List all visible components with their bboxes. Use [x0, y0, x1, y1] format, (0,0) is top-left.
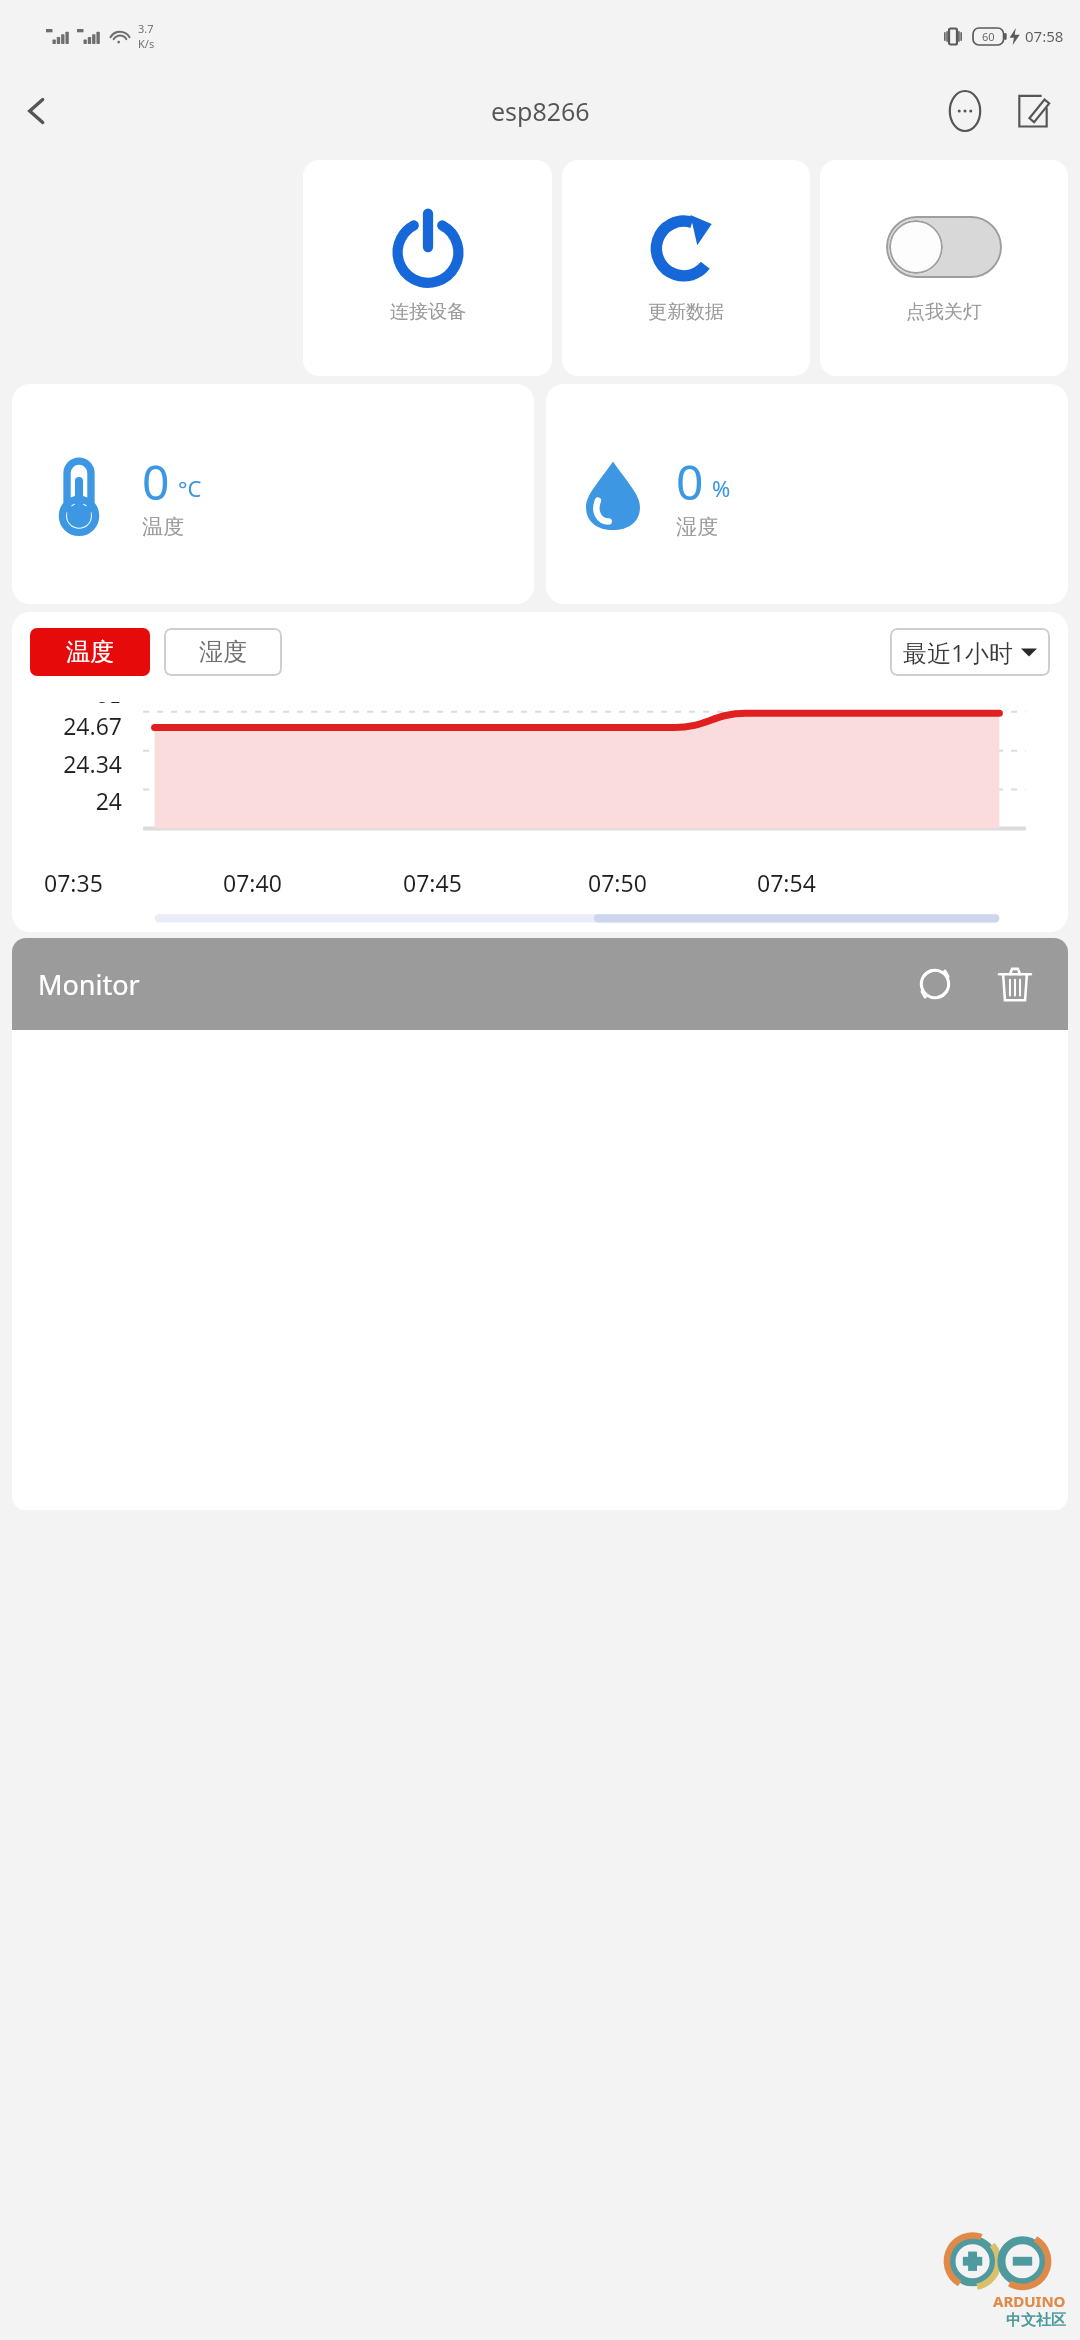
staticText: 3.7 — [138, 21, 154, 36]
button[interactable]: 更新数据 — [562, 160, 810, 376]
staticText: K/s — [138, 36, 155, 51]
staticText: 温度 — [142, 514, 184, 540]
staticText: 湿度 — [676, 514, 718, 540]
button[interactable]: Back — [8, 82, 66, 140]
staticText: 湿度 — [199, 637, 247, 667]
button[interactable]: 湿度 — [164, 628, 282, 676]
staticText: 更新数据 — [648, 300, 724, 324]
staticText: 最近1小时 — [903, 636, 1013, 669]
button[interactable]: 温度 — [30, 628, 150, 676]
staticText: 07:54 — [757, 867, 816, 898]
button[interactable]: More options — [936, 82, 994, 140]
staticText: 07:50 — [588, 867, 647, 898]
staticText: 24.34 — [12, 748, 122, 779]
staticText: 24.67 — [12, 710, 122, 741]
staticText: 连接设备 — [390, 300, 466, 324]
button[interactable]: Toggle light — [820, 160, 1068, 376]
staticText: Monitor — [38, 966, 140, 1003]
staticText: 24 — [12, 785, 122, 816]
button[interactable]: Refresh monitor — [904, 953, 966, 1015]
button[interactable]: 0 — [546, 384, 1068, 604]
staticText: 07:45 — [403, 867, 462, 898]
staticText: 07:40 — [223, 867, 282, 898]
staticText: % — [712, 473, 731, 503]
button[interactable]: Clear monitor — [984, 953, 1046, 1015]
staticText: 点我关灯 — [906, 300, 982, 324]
staticText: 60 — [982, 29, 995, 44]
staticText: ARDUINO — [993, 2291, 1066, 2311]
staticText: 07:35 — [44, 867, 103, 898]
button[interactable]: Edit — [1004, 82, 1062, 140]
staticText: 07:58 — [1025, 26, 1064, 46]
staticText: 25 — [12, 694, 122, 703]
staticText: 0 — [676, 449, 704, 514]
button[interactable]: 最近1小时 — [890, 628, 1050, 676]
staticText: 温度 — [66, 637, 114, 667]
staticText: 中文社区 — [1006, 2311, 1066, 2330]
staticText: °C — [178, 473, 202, 503]
staticText: 0 — [142, 449, 170, 514]
button[interactable]: 0 — [12, 384, 534, 604]
button[interactable]: Toggle light — [886, 216, 1002, 278]
button[interactable]: 连接设备 — [303, 160, 552, 376]
staticText: esp8266 — [491, 94, 590, 128]
